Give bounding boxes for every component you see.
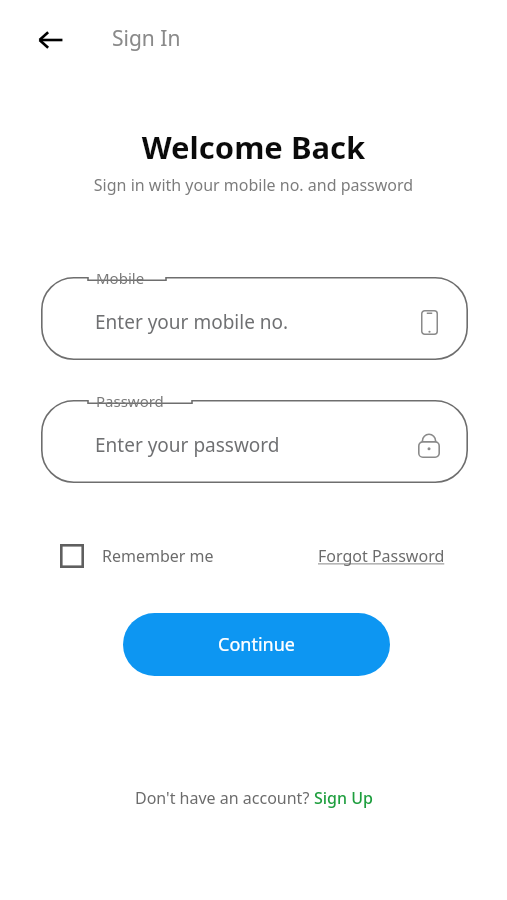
- staticText: Continue: [218, 632, 295, 657]
- button[interactable]: Back: [26, 17, 76, 63]
- button[interactable]: Mobile: [41, 277, 468, 360]
- staticText: Sign in with your mobile no. and passwor…: [0, 174, 507, 196]
- other: Mobile number: [412, 305, 446, 339]
- staticText: Enter your mobile no.: [95, 309, 289, 335]
- button[interactable]: Remember me: [60, 544, 214, 568]
- staticText: Enter your password: [95, 432, 280, 458]
- button[interactable]: Forgot Password: [318, 540, 445, 572]
- button[interactable]: Continue: [123, 613, 390, 676]
- staticText: Sign In: [112, 24, 181, 53]
- staticText: Remember me: [102, 545, 214, 567]
- staticText: Password: [96, 391, 164, 411]
- staticText: Welcome Back: [0, 126, 507, 168]
- staticText: Mobile: [96, 268, 145, 288]
- staticText: Don't have an account?: [135, 787, 314, 809]
- button[interactable]: Password: [41, 400, 468, 483]
- staticText: Forgot Password: [318, 545, 445, 567]
- button[interactable]: Sign Up: [314, 787, 373, 809]
- other: Password: [412, 428, 446, 462]
- staticText: Sign Up: [314, 787, 373, 809]
